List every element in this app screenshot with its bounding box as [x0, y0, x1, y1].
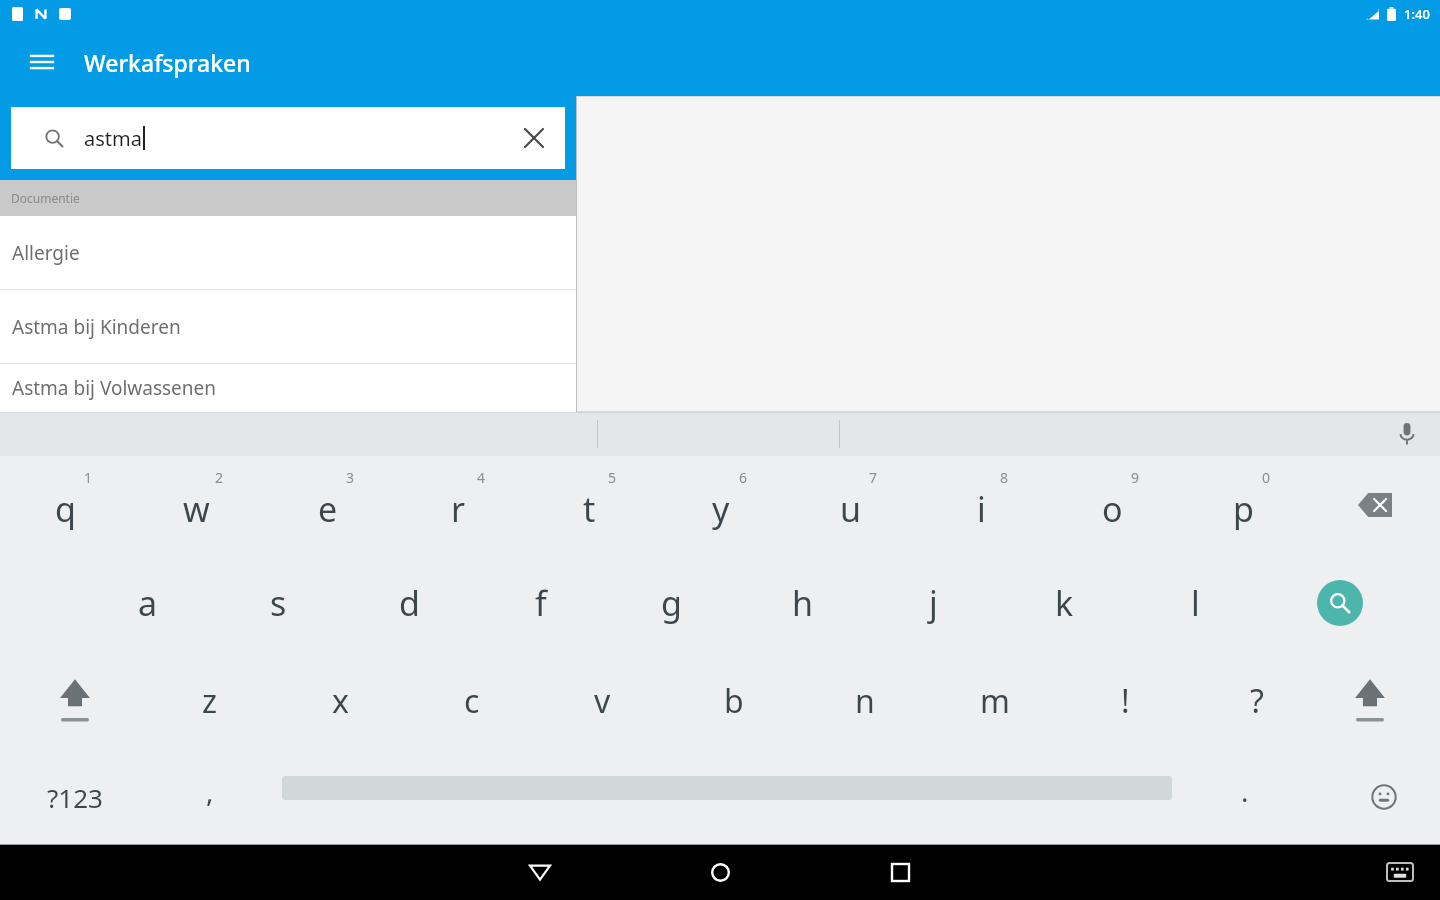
button[interactable]: Shift [0, 652, 150, 750]
button[interactable]: Emoji [1356, 769, 1412, 825]
staticText: x [332, 679, 349, 723]
staticText: , [206, 772, 214, 810]
staticText: t [583, 486, 596, 532]
staticText: 0 [1262, 468, 1271, 487]
staticText: 1 [84, 468, 93, 487]
staticText: Werkafspraken [84, 47, 251, 78]
button[interactable]: n [799, 652, 930, 750]
button[interactable]: Comma [165, 750, 255, 844]
staticText: u [840, 486, 862, 532]
button[interactable]: Astma bij Volwassenen [0, 364, 576, 412]
button[interactable]: Clear search [517, 121, 551, 155]
staticText: ! [1121, 679, 1130, 723]
staticText: astma [84, 125, 142, 152]
button[interactable]: 9 [1047, 456, 1178, 554]
staticText: o [1102, 486, 1123, 532]
staticText: i [977, 486, 986, 532]
staticText: k [1055, 580, 1074, 626]
staticText: d [399, 580, 420, 626]
staticText: 7 [869, 468, 878, 487]
staticText: s [270, 580, 287, 626]
button[interactable]: Recent apps [872, 844, 928, 900]
staticText: 8 [1000, 468, 1009, 487]
staticText: b [724, 679, 744, 723]
button[interactable]: h [737, 554, 868, 652]
button[interactable]: 8 [916, 456, 1047, 554]
button[interactable]: 6 [655, 456, 786, 554]
button[interactable]: k [999, 554, 1130, 652]
button[interactable]: 5 [524, 456, 655, 554]
button[interactable]: astma [11, 107, 565, 169]
button[interactable]: m [929, 652, 1060, 750]
button[interactable]: Period [1205, 750, 1285, 844]
button[interactable]: Voice input [1390, 417, 1424, 451]
button[interactable]: l [1130, 554, 1261, 652]
staticText: . [1241, 772, 1249, 810]
button[interactable]: 1 [0, 456, 131, 554]
button[interactable]: b [668, 652, 799, 750]
staticText: 4 [477, 468, 486, 487]
staticText: j [929, 580, 938, 626]
staticText: 1:40 [1404, 5, 1430, 23]
button[interactable]: g [606, 554, 737, 652]
staticText: f [535, 580, 547, 626]
staticText: z [202, 679, 218, 723]
staticText: e [318, 486, 338, 532]
staticText: 9 [1131, 468, 1140, 487]
staticText: Documentie [11, 190, 80, 206]
button[interactable]: v [537, 652, 668, 750]
staticText: m [980, 679, 1010, 723]
button[interactable]: 0 [1178, 456, 1309, 554]
button[interactable]: 3 [262, 456, 393, 554]
button[interactable]: 2 [131, 456, 262, 554]
button[interactable]: f [475, 554, 606, 652]
staticText: c [464, 679, 480, 723]
button[interactable]: d [344, 554, 475, 652]
staticText: a [138, 580, 158, 626]
staticText: 6 [739, 468, 748, 487]
staticText: Allergie [12, 240, 80, 266]
button[interactable]: Astma bij Kinderen [0, 290, 576, 363]
button[interactable]: c [406, 652, 537, 750]
button[interactable]: Search [1290, 554, 1390, 652]
staticText: l [1191, 580, 1200, 626]
staticText: 2 [215, 468, 224, 487]
staticText: g [661, 580, 682, 626]
button[interactable]: ! [1060, 652, 1191, 750]
staticText: q [55, 486, 76, 532]
staticText: h [792, 580, 814, 626]
button[interactable]: j [868, 554, 999, 652]
staticText: n [855, 679, 875, 723]
staticText: 3 [346, 468, 355, 487]
button[interactable]: 4 [393, 456, 524, 554]
button[interactable]: Allergie [0, 216, 576, 289]
staticText: 5 [608, 468, 617, 487]
button[interactable]: Switch keyboard [1378, 850, 1422, 894]
staticText: w [183, 486, 210, 532]
staticText: y [712, 486, 730, 532]
button[interactable]: Shift [1300, 652, 1440, 750]
button[interactable]: Back [512, 844, 568, 900]
staticText: v [594, 679, 611, 723]
button[interactable]: x [275, 652, 406, 750]
button[interactable]: Home [692, 844, 748, 900]
staticText: ?123 [47, 780, 103, 815]
button[interactable]: z [144, 652, 275, 750]
staticText: ? [1250, 679, 1264, 723]
staticText: Astma bij Volwassenen [12, 375, 217, 401]
button[interactable]: a [82, 554, 213, 652]
button[interactable]: Open navigation menu [22, 42, 62, 82]
button[interactable]: 7 [785, 456, 916, 554]
button[interactable]: s [213, 554, 344, 652]
button[interactable]: Backspace [1309, 456, 1440, 554]
staticText: r [451, 486, 466, 532]
button[interactable]: ?123 [20, 750, 130, 844]
button[interactable]: ? [1191, 652, 1322, 750]
staticText: Astma bij Kinderen [12, 314, 181, 340]
staticText: p [1233, 486, 1254, 532]
